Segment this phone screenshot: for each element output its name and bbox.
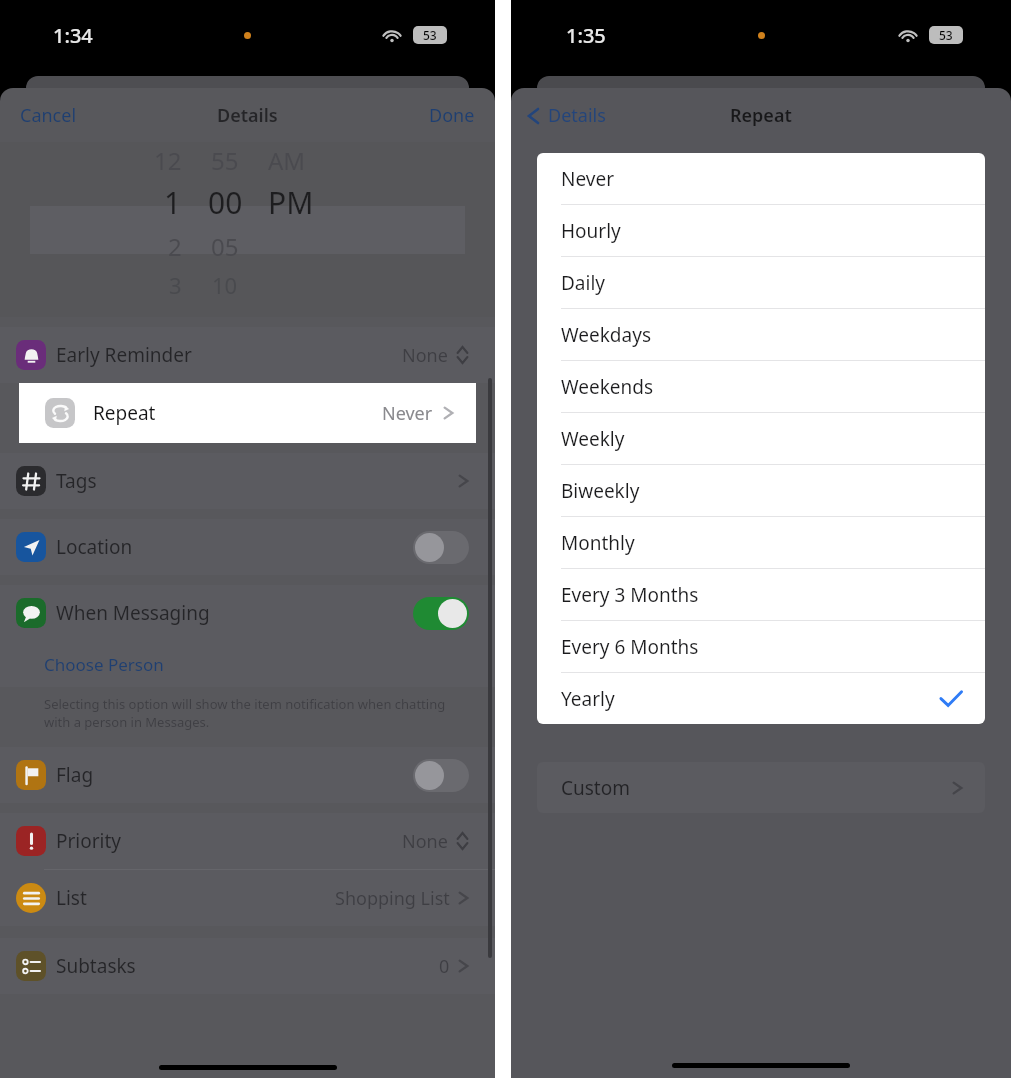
staticText: Weekly [561, 426, 625, 452]
button[interactable]: Cancel [20, 103, 77, 128]
button[interactable]: Weekends [537, 361, 985, 412]
button[interactable]: Location [0, 519, 495, 575]
button[interactable]: Choose Person [0, 641, 495, 687]
staticText: 2 [168, 230, 182, 263]
staticText: 12 [154, 144, 182, 177]
button[interactable]: Custom [537, 762, 985, 813]
button[interactable]: Flag [0, 747, 495, 803]
button[interactable]: Weekly [537, 413, 985, 464]
button[interactable]: Toggle on [413, 597, 469, 630]
staticText: Details [548, 103, 606, 128]
staticText: Weekdays [561, 322, 652, 348]
staticText: Never [561, 166, 614, 192]
staticText: Priority [56, 828, 122, 854]
staticText: Tags [56, 468, 97, 494]
staticText: Shopping List [335, 886, 450, 911]
staticText: When Messaging [56, 600, 210, 626]
staticText: Every 3 Months [561, 582, 699, 608]
staticText: 1:35 [566, 22, 606, 49]
staticText: 05 [211, 230, 239, 263]
button[interactable]: Tags [0, 453, 495, 509]
button[interactable]: Subtasks [0, 938, 495, 994]
button[interactable]: Done [429, 103, 475, 128]
staticText: 55 [211, 144, 239, 177]
staticText: Details [217, 103, 278, 128]
staticText: Custom [561, 775, 630, 801]
button[interactable]: Repeat [19, 383, 476, 443]
button[interactable]: Toggle off [413, 759, 469, 792]
staticText: Weekends [561, 374, 654, 400]
button[interactable]: Monthly [537, 517, 985, 568]
staticText: Early Reminder [56, 342, 192, 368]
staticText: List [56, 885, 87, 911]
staticText: 1 [164, 182, 182, 223]
button[interactable]: Hourly [537, 205, 985, 256]
button[interactable]: Early Reminder [0, 327, 495, 383]
button[interactable]: Priority [0, 813, 495, 869]
staticText: Monthly [561, 530, 635, 556]
staticText: None [402, 829, 448, 854]
staticText: Every 6 Months [561, 634, 699, 660]
staticText: Biweekly [561, 478, 640, 504]
staticText: 00 [208, 182, 243, 223]
staticText: Repeat [93, 400, 156, 426]
button[interactable]: Yearly [537, 673, 985, 724]
staticText: 10 [212, 270, 238, 300]
staticText: Hourly [561, 218, 621, 244]
staticText: Repeat [730, 103, 792, 128]
staticText: 53 [423, 27, 437, 43]
staticText: Daily [561, 270, 606, 296]
button[interactable]: Every 6 Months [537, 621, 985, 672]
button[interactable]: Toggle off [413, 531, 469, 564]
staticText: None [402, 343, 448, 368]
staticText: Flag [56, 762, 94, 788]
staticText: Never [382, 401, 433, 426]
staticText: Location [56, 534, 133, 560]
staticText: PM [268, 182, 314, 223]
staticText: Subtasks [56, 953, 136, 979]
button[interactable]: Details [527, 103, 606, 128]
button[interactable]: Every 3 Months [537, 569, 985, 620]
staticText: 1:34 [53, 22, 93, 49]
staticText: Choose Person [44, 653, 164, 676]
staticText: 53 [939, 27, 953, 43]
button[interactable]: List [0, 870, 495, 926]
staticText: Selecting this option will show the item… [44, 695, 465, 731]
staticText: Yearly [561, 686, 615, 712]
button[interactable]: Weekdays [537, 309, 985, 360]
staticText: 3 [169, 270, 182, 300]
button[interactable]: When Messaging [0, 585, 495, 641]
button[interactable]: Daily [537, 257, 985, 308]
staticText: AM [268, 144, 306, 177]
staticText: 0 [439, 954, 450, 979]
button[interactable]: Never [537, 153, 985, 204]
button[interactable]: Biweekly [537, 465, 985, 516]
